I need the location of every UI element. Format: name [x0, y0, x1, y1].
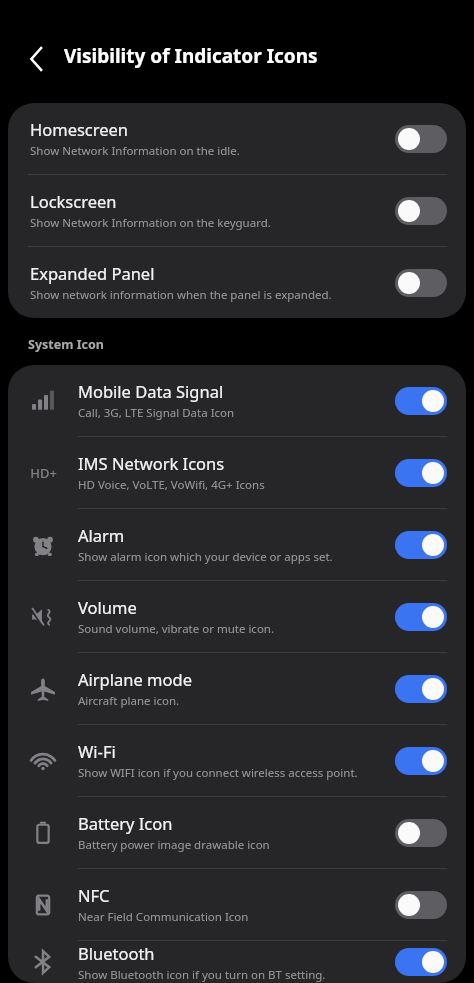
button[interactable]: On: [395, 531, 447, 559]
staticText: Expanded Panel: [30, 262, 155, 284]
staticText: Show Network Information on the idle.: [30, 143, 240, 159]
button[interactable]: Bluetooth: [8, 941, 466, 983]
button[interactable]: NFC: [8, 869, 466, 940]
button[interactable]: Volume: [8, 581, 466, 652]
staticText: Aircraft plane icon.: [78, 693, 180, 709]
staticText: Homescreen: [30, 118, 129, 140]
button[interactable]: Homescreen: [8, 103, 466, 174]
staticText: HD Voice, VoLTE, VoWifi, 4G+ Icons: [78, 477, 265, 493]
button[interactable]: On: [395, 747, 447, 775]
button[interactable]: HD+: [8, 437, 466, 508]
staticText: Battery power image drawable icon: [78, 837, 270, 853]
staticText: Airplane mode: [78, 668, 192, 690]
button[interactable]: On: [395, 603, 447, 631]
staticText: Lockscreen: [30, 190, 117, 212]
staticText: Mobile Data Signal: [78, 380, 224, 402]
staticText: Volume: [78, 596, 137, 618]
staticText: Visibility of Indicator Icons: [64, 43, 318, 69]
button[interactable]: Off: [395, 269, 447, 297]
staticText: IMS Network Icons: [78, 452, 225, 474]
staticText: Show alarm icon which your device or app…: [78, 549, 333, 565]
staticText: Call, 3G, LTE Signal Data Icon: [78, 405, 235, 421]
staticText: Sound volume, vibrate or mute icon.: [78, 621, 275, 637]
staticText: Battery Icon: [78, 812, 173, 834]
button[interactable]: Off: [395, 125, 447, 153]
button[interactable]: Off: [395, 891, 447, 919]
button[interactable]: On: [395, 387, 447, 415]
button[interactable]: Battery Icon: [8, 797, 466, 868]
staticText: Wi-Fi: [78, 740, 116, 762]
button[interactable]: Wi-Fi: [8, 725, 466, 796]
staticText: HD+: [30, 464, 57, 482]
staticText: System Icon: [28, 336, 104, 353]
staticText: Near Field Communication Icon: [78, 909, 249, 925]
staticText: Alarm: [78, 524, 125, 546]
button[interactable]: Lockscreen: [8, 175, 466, 246]
button[interactable]: On: [395, 459, 447, 487]
staticText: Bluetooth: [78, 942, 155, 964]
staticText: Show WIFI icon if you connect wireless a…: [78, 765, 358, 781]
button[interactable]: Off: [395, 197, 447, 225]
button[interactable]: Expanded Panel: [8, 247, 466, 318]
staticText: NFC: [78, 884, 110, 906]
staticText: Show network information when the panel …: [30, 287, 332, 303]
staticText: Show Network Information on the keyguard…: [30, 215, 271, 231]
button[interactable]: Alarm: [8, 509, 466, 580]
button[interactable]: Airplane mode: [8, 653, 466, 724]
button[interactable]: Off: [395, 819, 447, 847]
button[interactable]: On: [395, 675, 447, 703]
staticText: Show Bluetooth icon if you turn on BT se…: [78, 967, 326, 983]
button[interactable]: On: [395, 948, 447, 976]
button[interactable]: Mobile Data Signal: [8, 365, 466, 436]
button[interactable]: Back: [16, 38, 58, 80]
